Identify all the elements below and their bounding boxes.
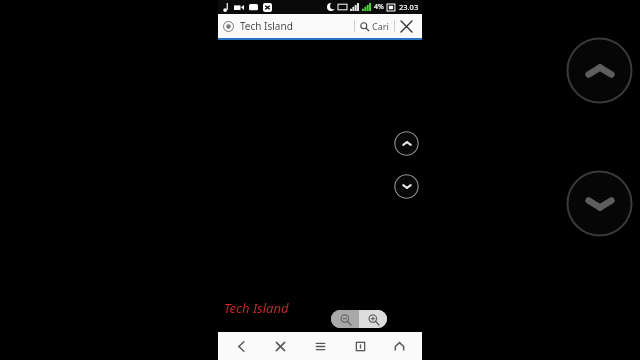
staticText: Tech Island [240,19,354,33]
staticText: 4% [374,2,384,12]
button[interactable]: Scroll up [394,131,419,156]
button[interactable]: Zoom in [359,310,387,328]
button[interactable]: Zoom out [331,310,359,328]
button[interactable]: Back [224,332,258,360]
button[interactable]: Scroll down [394,174,419,199]
button[interactable]: Close [395,15,417,37]
staticText: Cari [372,20,389,32]
button[interactable]: Stop [263,332,297,360]
button[interactable]: Page down [566,170,633,237]
button[interactable]: Menu [303,332,337,360]
button[interactable]: Cari [355,20,394,32]
button[interactable]: Home [382,332,416,360]
button[interactable]: Page up [566,37,633,104]
staticText: 23.03 [399,2,419,12]
button[interactable]: Tech Island [218,14,422,38]
staticText: Tech Island [224,299,289,317]
button[interactable]: Tabs [343,332,377,360]
